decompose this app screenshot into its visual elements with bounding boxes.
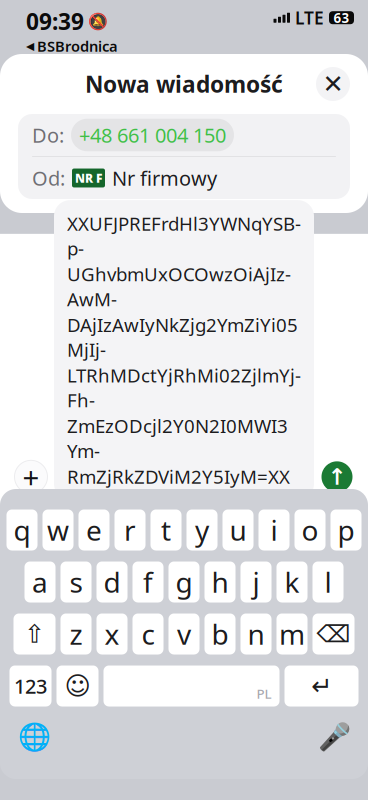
staticText: m [279,615,305,653]
button[interactable]: p [330,509,361,550]
button[interactable]: d [96,561,127,602]
button[interactable]: j [240,561,271,602]
staticText: a [32,563,48,601]
staticText: RmZjRkZDViM2Y5IyM=XX [67,464,290,489]
button[interactable]: y [186,509,217,550]
staticText: 🎤 [317,721,350,752]
staticText: ↵ [311,672,332,700]
staticText: p [337,511,354,549]
staticText: b [211,615,228,653]
button[interactable]: x [96,613,127,654]
staticText: BSBrodnica [37,36,118,56]
button[interactable]: Dodaj załącznik [8,454,54,500]
button[interactable]: g [168,561,199,602]
button[interactable]: f [132,561,163,602]
staticText: ◀ [26,40,34,52]
staticText: 63 [333,9,349,27]
button[interactable]: q [6,509,37,550]
button[interactable]: s [60,561,91,602]
staticText: ⇧ [24,620,45,648]
button[interactable]: ⇧ [13,613,55,654]
button[interactable]: u [222,509,253,550]
button[interactable]: Zmień język klawiatury [12,716,56,756]
button[interactable]: t [150,509,181,550]
button[interactable]: ⌫ [312,613,354,654]
staticText: ⌫ [316,620,350,648]
staticText: Nr firmowy [112,165,217,191]
staticText: + [22,457,39,496]
staticText: g [175,563,192,601]
staticText: z [69,615,82,653]
button[interactable]: r [114,509,145,550]
staticText: PL [256,685,271,702]
button[interactable]: ☺ [56,665,98,706]
staticText: UGhvbmUxOCOwzOiAjIzAwM- [67,262,291,311]
staticText: c [141,615,154,653]
staticText: y [195,511,209,549]
staticText: v [177,615,191,653]
staticText: t [161,511,171,549]
staticText: i [270,511,277,549]
staticText: u [229,511,246,549]
staticText: ↑ [327,464,346,490]
staticText: ☺ [64,672,90,700]
button[interactable]: w [42,509,73,550]
button[interactable]: h [204,561,235,602]
button[interactable]: n [240,613,271,654]
staticText: DAjIzAwIyNkZjg2YmZiYi05MjIj- [67,312,298,362]
button[interactable]: o [294,509,325,550]
button[interactable]: e [78,509,109,550]
staticText: o [301,511,318,549]
staticText: k [284,563,299,601]
staticText: f [143,563,153,601]
button[interactable]: a [24,561,55,602]
button[interactable]: ↵ [284,665,358,706]
button[interactable]: z [60,613,91,654]
button[interactable]: b [204,613,235,654]
staticText: 🔕 [88,12,108,30]
staticText: LTE [295,6,324,29]
staticText: ✕ [322,70,343,98]
button[interactable]: v [168,613,199,654]
staticText: l [324,563,331,601]
staticText: w [47,511,69,549]
staticText: +48 661 004 150 [79,122,226,148]
staticText: Od: [32,165,65,191]
button[interactable]: Spacja [103,665,279,706]
button[interactable]: Zamknij [316,67,350,101]
button[interactable]: k [276,561,307,602]
staticText: ZmEzODcjl2Y0N2I0MWI3Ym- [67,413,288,463]
button[interactable]: Dyktowanie [312,716,356,756]
button[interactable]: i [258,509,289,550]
staticText: 09:39 [26,6,84,36]
staticText: q [13,511,30,549]
button[interactable]: m [276,613,307,654]
button[interactable]: Wyślij [314,454,360,500]
staticText: Do: [32,122,64,148]
staticText: 123 [14,673,47,699]
staticText: h [211,563,228,601]
staticText: LTRhMDctYjRhMi02ZjlmYjFh- [67,363,301,412]
staticText: n [247,615,264,653]
staticText: e [86,511,102,549]
staticText: s [69,563,82,601]
staticText: 🌐 [17,721,50,752]
staticText: x [104,615,119,653]
button[interactable]: c [132,613,163,654]
staticText: r [124,511,136,549]
staticText: Nowa wiadomość [85,69,283,99]
button[interactable]: 123 [9,665,51,706]
staticText: d [103,563,120,601]
staticText: j [252,563,259,601]
button[interactable]: l [312,561,343,602]
staticText: NR F [75,170,102,186]
staticText: XXUFJPREFrdHl3YWNqYSBp- [67,211,301,261]
